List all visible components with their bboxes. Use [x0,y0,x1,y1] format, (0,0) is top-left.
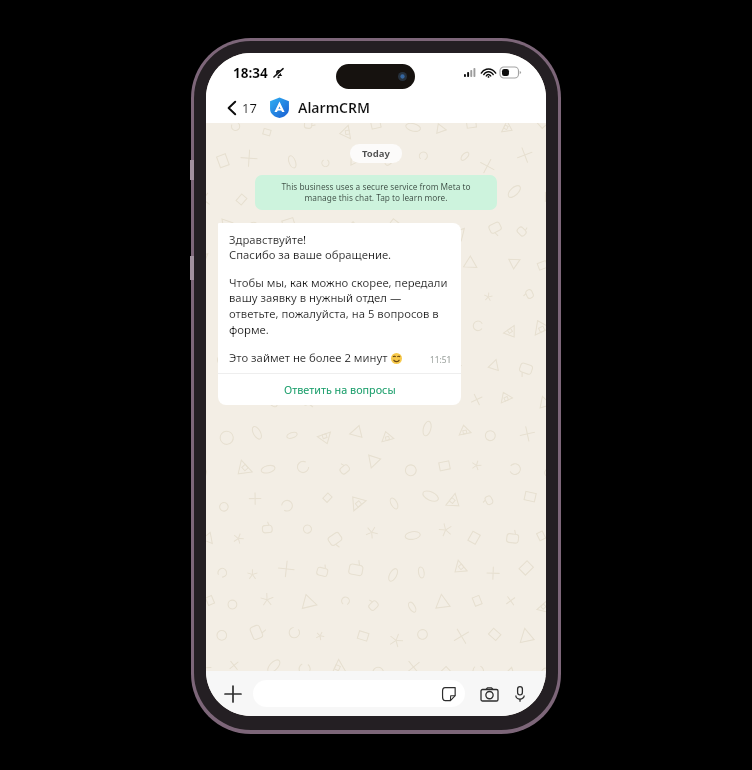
staticText: 11:51 [430,354,452,365]
staticText: Чтобы мы, как можно скорее, передали ваш… [229,275,452,337]
staticText: Today [362,147,390,160]
button[interactable]: This business uses a secure service from… [255,175,497,210]
button[interactable]: Ответить на вопросы [218,374,461,405]
staticText: Это займет не более 2 минут [229,350,388,365]
staticText: This business uses a secure service from… [265,181,487,204]
button[interactable]: Today [350,144,402,163]
staticText: AlarmCRM [298,98,371,117]
staticText: Ответить на вопросы [284,382,396,397]
staticText: Здравствуйте! Спасибо за ваше обращение. [229,232,392,262]
button[interactable]: Record voice message [507,681,533,707]
button[interactable]: Stickers [253,680,465,707]
button[interactable]: Attach [219,680,246,707]
button[interactable]: AlarmCRM [269,94,371,121]
staticText: 18:34 [233,64,268,82]
staticText: 17 [242,99,257,117]
button[interactable]: Back to chats, 17 unread [224,94,261,122]
other: Stickers [442,687,456,701]
button[interactable]: Camera [476,681,502,707]
